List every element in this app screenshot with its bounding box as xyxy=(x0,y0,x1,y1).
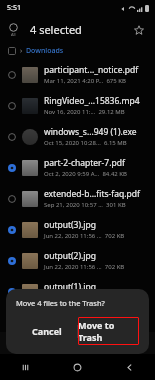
button[interactable]: Cancel xyxy=(16,325,77,337)
staticText: › xyxy=(20,46,23,56)
staticText: Mar 11, 2021 4:20 P... 675 KB xyxy=(44,77,126,85)
staticText: Move to Trash xyxy=(78,319,139,343)
button[interactable]: More xyxy=(124,332,155,354)
staticText: All xyxy=(11,32,16,37)
staticText: Nov 16, 2020 11:... 29.12 MB xyxy=(44,108,125,116)
staticText: 4 selected xyxy=(30,22,130,37)
staticText: Jun 22, 2020 11:56 ... 531 KB xyxy=(44,294,125,302)
button[interactable]: Copy xyxy=(31,332,62,354)
staticText: Jun 22, 2020 11:56 ... 702 KB xyxy=(44,263,125,271)
button[interactable]: More options xyxy=(130,21,148,39)
button[interactable]: output(3).jpg xyxy=(0,214,155,245)
button[interactable]: Internal storage xyxy=(8,47,16,55)
staticText: 5:51 xyxy=(7,3,21,13)
button[interactable]: Move xyxy=(0,332,31,354)
staticText: extended-b...fits-faq.pdf xyxy=(44,188,140,200)
staticText: part-2-chapter-7.pdf xyxy=(44,157,125,169)
staticText: output(3).jpg xyxy=(44,219,96,231)
button[interactable]: Move to Trash xyxy=(78,317,139,345)
button[interactable]: Select all xyxy=(7,21,20,39)
button[interactable]: RingVideo_...15836.mp4 xyxy=(0,90,155,121)
button[interactable]: windows_s...949 (1).exe xyxy=(0,121,155,152)
staticText: Oct 2, 2020 9:59 A... 84.42 KB xyxy=(44,170,127,178)
button[interactable]: Home xyxy=(51,354,103,380)
staticText: Cancel xyxy=(32,325,62,337)
button[interactable]: Downloads xyxy=(26,46,64,56)
staticText: Oct 15, 2020 10:28... 6.15 MB xyxy=(44,139,127,147)
staticText: Move 4 files to the Trash? xyxy=(16,298,105,308)
button[interactable]: output(1).jpg xyxy=(0,276,155,307)
button[interactable]: Recents xyxy=(0,354,51,380)
button[interactable]: participant..._notice.pdf xyxy=(0,59,155,90)
staticText: Sep 21, 2020 10:57 ... 301 KB xyxy=(44,201,126,209)
staticText: participant..._notice.pdf xyxy=(44,64,139,76)
button[interactable]: output(2).jpg xyxy=(0,245,155,276)
staticText: RingVideo_...15836.mp4 xyxy=(44,95,140,107)
staticText: output(1).jpg xyxy=(44,281,96,293)
staticText: Jun 22, 2020 11:56 ... 702 KB xyxy=(44,232,125,240)
button[interactable]: Share xyxy=(62,332,93,354)
button[interactable]: part-2-chapter-7.pdf xyxy=(0,152,155,183)
staticText: output(2).jpg xyxy=(44,250,96,262)
button[interactable]: Delete xyxy=(93,332,124,354)
button[interactable]: Back xyxy=(103,354,155,380)
staticText: windows_s...949 (1).exe xyxy=(44,126,137,138)
button[interactable]: extended-b...fits-faq.pdf xyxy=(0,183,155,214)
